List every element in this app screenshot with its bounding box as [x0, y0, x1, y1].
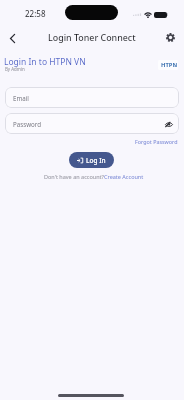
staticText: Create Account [104, 173, 144, 180]
button[interactable]: Show password [163, 118, 175, 130]
staticText: Log In [86, 156, 106, 165]
staticText: 22:58 [25, 8, 46, 19]
staticText: Login Toner Connect [48, 31, 136, 43]
staticText: Login In to HTPN VN [4, 56, 86, 68]
button[interactable]: Email [5, 87, 179, 108]
staticText: Forgot Password [135, 138, 178, 145]
staticText: Email [13, 94, 29, 102]
button[interactable]: Create Account [104, 173, 144, 180]
button[interactable]: Password [5, 113, 179, 134]
button[interactable]: Forgot Password [133, 136, 180, 147]
staticText: By Admin [5, 66, 25, 72]
staticText: . [174, 61, 176, 69]
staticText: Password [13, 120, 41, 128]
button[interactable]: Settings [162, 29, 178, 45]
staticText: HTPN [161, 61, 178, 69]
button[interactable]: Log In [69, 152, 114, 168]
button[interactable]: Back [4, 30, 20, 46]
staticText: Don't have an account? [44, 173, 104, 180]
